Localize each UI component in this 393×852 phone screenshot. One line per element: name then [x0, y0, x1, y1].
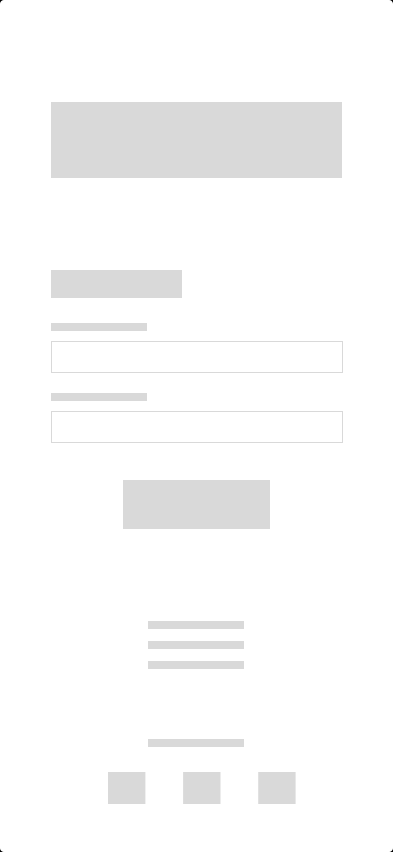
- button[interactable]: Second text field: [51, 411, 343, 443]
- button[interactable]: First text field: [51, 341, 343, 373]
